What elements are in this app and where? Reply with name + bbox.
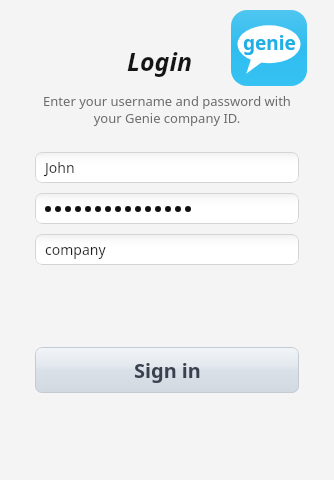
staticText: company	[45, 240, 106, 259]
button[interactable]: Sign in	[35, 347, 299, 393]
button[interactable]: John	[35, 152, 299, 183]
staticText: genie	[243, 30, 296, 56]
staticText: John	[45, 158, 75, 177]
staticText: Enter your username and password with yo…	[22, 92, 312, 127]
staticText: Login	[127, 44, 193, 78]
staticText: Sign in	[134, 357, 201, 384]
button[interactable]: company	[35, 234, 299, 265]
other: Genie logo	[231, 10, 307, 86]
button[interactable]	[35, 193, 299, 224]
